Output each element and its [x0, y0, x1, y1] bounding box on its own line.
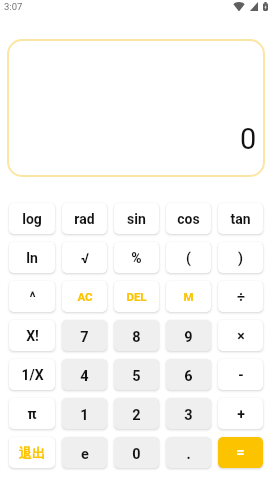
button[interactable]: ( [166, 242, 211, 273]
button[interactable]: . [166, 437, 211, 468]
staticText: % [131, 250, 142, 266]
staticText: ( [186, 250, 191, 266]
button[interactable]: ^ [9, 281, 55, 312]
staticText: √ [81, 250, 89, 266]
button[interactable]: ln [9, 242, 55, 273]
staticText: 3 [184, 407, 193, 424]
staticText: 3:07 [4, 1, 23, 12]
staticText: 1/X [21, 367, 44, 383]
staticText: ln [26, 250, 38, 266]
staticText: sin [127, 211, 146, 227]
button[interactable]: 9 [166, 320, 211, 351]
button[interactable]: tan [218, 203, 263, 234]
staticText: × [237, 328, 245, 344]
staticText: = [236, 444, 245, 461]
staticText: X! [26, 328, 39, 344]
staticText: 5 [132, 368, 141, 385]
staticText: ) [238, 250, 243, 266]
staticText: 2 [132, 407, 141, 424]
staticText: . [186, 446, 191, 463]
button[interactable]: % [114, 242, 159, 273]
button[interactable]: X! [9, 320, 55, 351]
other: Battery charging [263, 2, 268, 11]
button[interactable]: 1 [62, 398, 107, 429]
button[interactable]: 7 [62, 320, 107, 351]
staticText: cos [177, 211, 200, 227]
button[interactable]: 3 [166, 398, 211, 429]
button[interactable]: - [218, 359, 263, 390]
button[interactable]: e [62, 437, 107, 468]
button[interactable]: M [166, 281, 211, 312]
button[interactable]: 5 [114, 359, 159, 390]
button[interactable]: 0 [114, 437, 159, 468]
staticText: 退出 [19, 445, 45, 461]
staticText: π [27, 406, 37, 422]
button[interactable]: 8 [114, 320, 159, 351]
button[interactable]: cos [166, 203, 211, 234]
staticText: log [22, 211, 42, 227]
staticText: tan [230, 211, 251, 227]
button[interactable]: ) [218, 242, 263, 273]
button[interactable]: DEL [114, 281, 159, 312]
button[interactable]: 6 [166, 359, 211, 390]
button[interactable]: × [218, 320, 263, 351]
staticText: AC [77, 290, 93, 303]
button[interactable]: AC [62, 281, 107, 312]
staticText: + [237, 406, 245, 422]
staticText: 1 [80, 407, 89, 424]
button[interactable]: 4 [62, 359, 107, 390]
button[interactable]: sin [114, 203, 159, 234]
staticText: rad [74, 211, 95, 227]
staticText: 6 [184, 368, 193, 385]
button[interactable]: √ [62, 242, 107, 273]
button[interactable]: 2 [114, 398, 159, 429]
staticText: ÷ [237, 289, 245, 305]
staticText: M [183, 290, 194, 303]
button[interactable]: 0 [7, 39, 265, 177]
staticText: 9 [184, 329, 193, 346]
staticText: ^ [29, 289, 36, 305]
staticText: 0 [240, 122, 257, 156]
staticText: 4 [80, 368, 89, 385]
staticText: - [238, 367, 244, 383]
staticText: 0 [132, 446, 141, 463]
button[interactable]: = [218, 437, 263, 468]
button[interactable]: log [9, 203, 55, 234]
staticText: 8 [132, 329, 141, 346]
staticText: 7 [80, 329, 89, 346]
staticText: e [81, 446, 89, 463]
other: Mobile signal [250, 2, 258, 11]
button[interactable]: 1/X [9, 359, 55, 390]
button[interactable]: π [9, 398, 55, 429]
other: Wi-Fi signal [233, 2, 245, 11]
button[interactable]: + [218, 398, 263, 429]
staticText: DEL [126, 290, 147, 303]
button[interactable]: 退出 [9, 437, 55, 468]
button[interactable]: rad [62, 203, 107, 234]
button[interactable]: ÷ [218, 281, 263, 312]
